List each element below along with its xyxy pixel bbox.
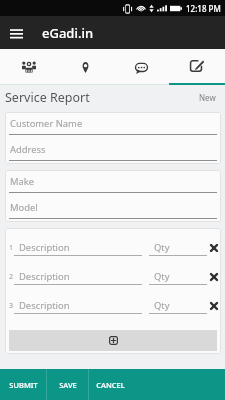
staticText: Address [10, 143, 46, 156]
button[interactable]: CANCEL [89, 369, 132, 400]
staticText: 12:18 PM [186, 3, 221, 14]
staticText: Description [19, 299, 70, 312]
staticText: SUBMIT [9, 380, 38, 390]
button[interactable]: SAVE [47, 369, 88, 400]
staticText: CANCEL [96, 380, 125, 390]
staticText: Customer Name [10, 117, 83, 130]
button[interactable]: Remove line item [207, 269, 220, 285]
staticText: Model [10, 201, 38, 214]
staticText: 3. [9, 301, 14, 315]
staticText: New [199, 92, 216, 103]
staticText: 1. [9, 243, 14, 257]
button[interactable]: Reports [169, 49, 225, 85]
button[interactable]: SUBMIT [0, 369, 46, 400]
button[interactable]: Open navigation menu [0, 16, 33, 49]
staticText: Description [19, 241, 70, 254]
staticText: Qty [154, 241, 170, 254]
button[interactable]: Messages [113, 49, 169, 85]
button[interactable]: Customers [0, 49, 57, 85]
staticText: SAVE [59, 380, 77, 390]
staticText: Description [19, 270, 70, 283]
staticText: Service Report [5, 89, 90, 106]
staticText: Make [10, 175, 35, 188]
button[interactable]: Remove line item [207, 240, 220, 256]
button[interactable]: Add line item [9, 330, 217, 351]
staticText: eGadi.in [42, 24, 94, 42]
staticText: Qty [154, 299, 170, 312]
staticText: 2. [9, 272, 14, 286]
button[interactable]: Places [57, 49, 113, 85]
staticText: Qty [154, 270, 170, 283]
button[interactable]: Remove line item [207, 298, 220, 314]
